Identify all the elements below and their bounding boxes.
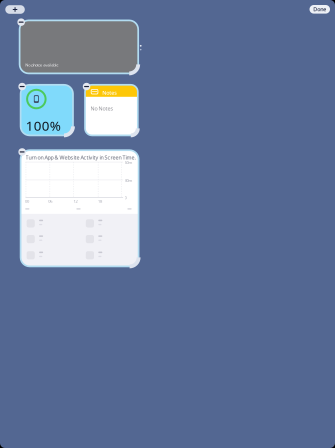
staticText: 06 bbox=[48, 199, 52, 204]
staticText: 100% bbox=[26, 117, 61, 134]
staticText: 00 bbox=[25, 199, 29, 204]
staticText: Notes bbox=[102, 89, 117, 96]
button[interactable]: Remove widget bbox=[18, 148, 26, 156]
button[interactable]: Remove widget bbox=[17, 18, 25, 26]
staticText: 18 bbox=[98, 199, 102, 204]
button[interactable]: Add widget bbox=[5, 5, 25, 14]
button[interactable]: Remove widget bbox=[18, 83, 26, 90]
staticText: 60m bbox=[125, 160, 133, 165]
button[interactable]: Done bbox=[309, 5, 330, 14]
staticText: Done bbox=[313, 6, 326, 13]
staticText: 30m bbox=[125, 178, 133, 183]
staticText: No Notes bbox=[90, 105, 113, 112]
staticText: 12 bbox=[73, 199, 77, 204]
staticText: No photos available bbox=[25, 62, 58, 68]
staticText: 0 bbox=[125, 195, 127, 200]
staticText: Turn on App & Website Activity in Screen… bbox=[25, 154, 135, 161]
button[interactable]: Remove widget bbox=[83, 83, 90, 90]
